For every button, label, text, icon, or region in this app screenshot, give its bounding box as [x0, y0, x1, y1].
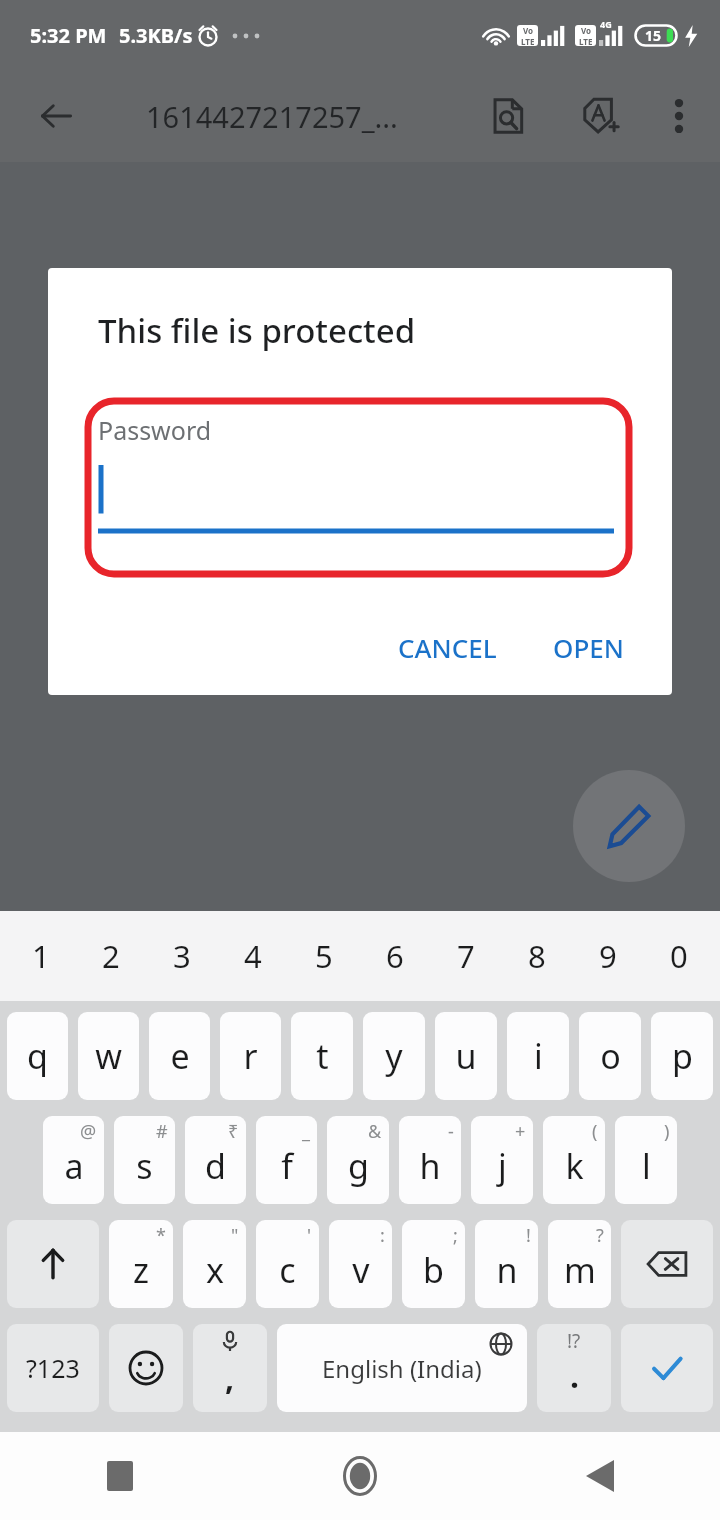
- staticText: 0: [670, 935, 688, 977]
- staticText: h: [419, 1143, 441, 1189]
- button[interactable]: Shift: [7, 1220, 99, 1308]
- staticText: &: [368, 1119, 382, 1144]
- button[interactable]: ": [183, 1220, 246, 1308]
- button[interactable]: Period: [537, 1324, 611, 1412]
- button[interactable]: OPEN: [535, 614, 642, 681]
- staticText: .: [570, 1354, 579, 1398]
- staticText: i: [534, 1033, 543, 1079]
- staticText: LTE: [579, 36, 593, 46]
- staticText: v: [352, 1247, 370, 1293]
- button[interactable]: Add annotation: [566, 82, 634, 150]
- staticText: g: [348, 1143, 369, 1189]
- button[interactable]: i: [507, 1012, 569, 1100]
- button[interactable]: 0: [643, 911, 714, 1001]
- button[interactable]: Comma, voice input: [193, 1324, 267, 1412]
- staticText: 5.3KB/s: [119, 22, 193, 49]
- button[interactable]: *: [109, 1220, 173, 1308]
- staticText: t: [316, 1033, 329, 1079]
- button[interactable]: +: [471, 1116, 533, 1204]
- button[interactable]: _: [256, 1116, 317, 1204]
- button[interactable]: Backspace: [621, 1220, 713, 1308]
- staticText: y: [385, 1033, 403, 1079]
- button[interactable]: Back: [22, 82, 90, 150]
- staticText: 9: [599, 935, 617, 977]
- button[interactable]: -: [399, 1116, 461, 1204]
- button[interactable]: 3: [146, 911, 217, 1001]
- staticText: +: [515, 1119, 526, 1144]
- button[interactable]: (: [543, 1116, 605, 1204]
- button[interactable]: Recent apps: [0, 1432, 240, 1520]
- button[interactable]: p: [651, 1012, 713, 1100]
- staticText: f: [281, 1143, 293, 1189]
- button[interactable]: ₹: [185, 1116, 246, 1204]
- staticText: ?123: [26, 1351, 80, 1385]
- button[interactable]: CANCEL: [380, 614, 515, 681]
- button[interactable]: 7: [430, 911, 501, 1001]
- staticText: 4: [244, 935, 262, 977]
- button[interactable]: ;: [402, 1220, 465, 1308]
- staticText: ': [307, 1223, 312, 1248]
- button[interactable]: w: [78, 1012, 139, 1100]
- button[interactable]: r: [220, 1012, 281, 1100]
- staticText: !: [526, 1223, 531, 1248]
- button[interactable]: English (India): [277, 1324, 527, 1412]
- button[interactable]: :: [329, 1220, 392, 1308]
- staticText: This file is protected: [98, 308, 416, 353]
- staticText: OPEN: [553, 630, 624, 665]
- staticText: 4G: [600, 18, 612, 30]
- button[interactable]: 9: [572, 911, 643, 1001]
- button[interactable]: y: [363, 1012, 425, 1100]
- button[interactable]: Home: [240, 1432, 480, 1520]
- staticText: LTE: [521, 36, 535, 46]
- button[interactable]: o: [579, 1012, 641, 1100]
- staticText: (: [592, 1119, 598, 1144]
- button[interactable]: 2: [76, 911, 146, 1001]
- button[interactable]: Search document: [474, 82, 542, 150]
- staticText: q: [27, 1033, 48, 1079]
- staticText: a: [64, 1143, 84, 1189]
- staticText: -: [448, 1119, 454, 1144]
- button[interactable]: e: [149, 1012, 210, 1100]
- button[interactable]: ': [256, 1220, 319, 1308]
- staticText: o: [600, 1033, 621, 1079]
- staticText: CANCEL: [398, 630, 497, 665]
- staticText: s: [136, 1143, 153, 1189]
- button[interactable]: @: [43, 1116, 104, 1204]
- staticText: ?: [596, 1223, 604, 1248]
- staticText: b: [423, 1247, 444, 1293]
- button[interactable]: q: [7, 1012, 68, 1100]
- staticText: 5:32 PM: [30, 22, 107, 49]
- button[interactable]: 4: [217, 911, 288, 1001]
- button[interactable]: &: [327, 1116, 389, 1204]
- staticText: 5: [315, 935, 333, 977]
- button[interactable]: More options: [648, 85, 710, 147]
- button[interactable]: 1: [6, 911, 76, 1001]
- button[interactable]: 6: [359, 911, 430, 1001]
- button[interactable]: Enter: [621, 1324, 713, 1412]
- staticText: j: [498, 1143, 507, 1189]
- button[interactable]: #: [114, 1116, 175, 1204]
- staticText: ,: [225, 1356, 235, 1400]
- staticText: c: [279, 1247, 296, 1293]
- staticText: m: [564, 1247, 596, 1293]
- staticText: English (India): [322, 1352, 482, 1385]
- button[interactable]: ): [615, 1116, 677, 1204]
- button[interactable]: Emoji: [109, 1324, 183, 1412]
- staticText: 1: [32, 935, 50, 977]
- button[interactable]: !: [475, 1220, 538, 1308]
- button[interactable]: u: [435, 1012, 497, 1100]
- button[interactable]: t: [291, 1012, 353, 1100]
- button[interactable]: ?123: [7, 1324, 99, 1412]
- button[interactable]: Back: [480, 1432, 720, 1520]
- staticText: 8: [528, 935, 546, 977]
- staticText: Vo: [581, 25, 592, 36]
- button[interactable]: Edit: [573, 770, 685, 882]
- button[interactable]: 5: [288, 911, 359, 1001]
- staticText: u: [455, 1033, 477, 1079]
- staticText: 3: [173, 935, 191, 977]
- staticText: Vo: [523, 25, 534, 36]
- button[interactable]: 8: [501, 911, 572, 1001]
- staticText: @: [80, 1119, 97, 1144]
- button[interactable]: ?: [548, 1220, 611, 1308]
- staticText: 7: [457, 935, 475, 977]
